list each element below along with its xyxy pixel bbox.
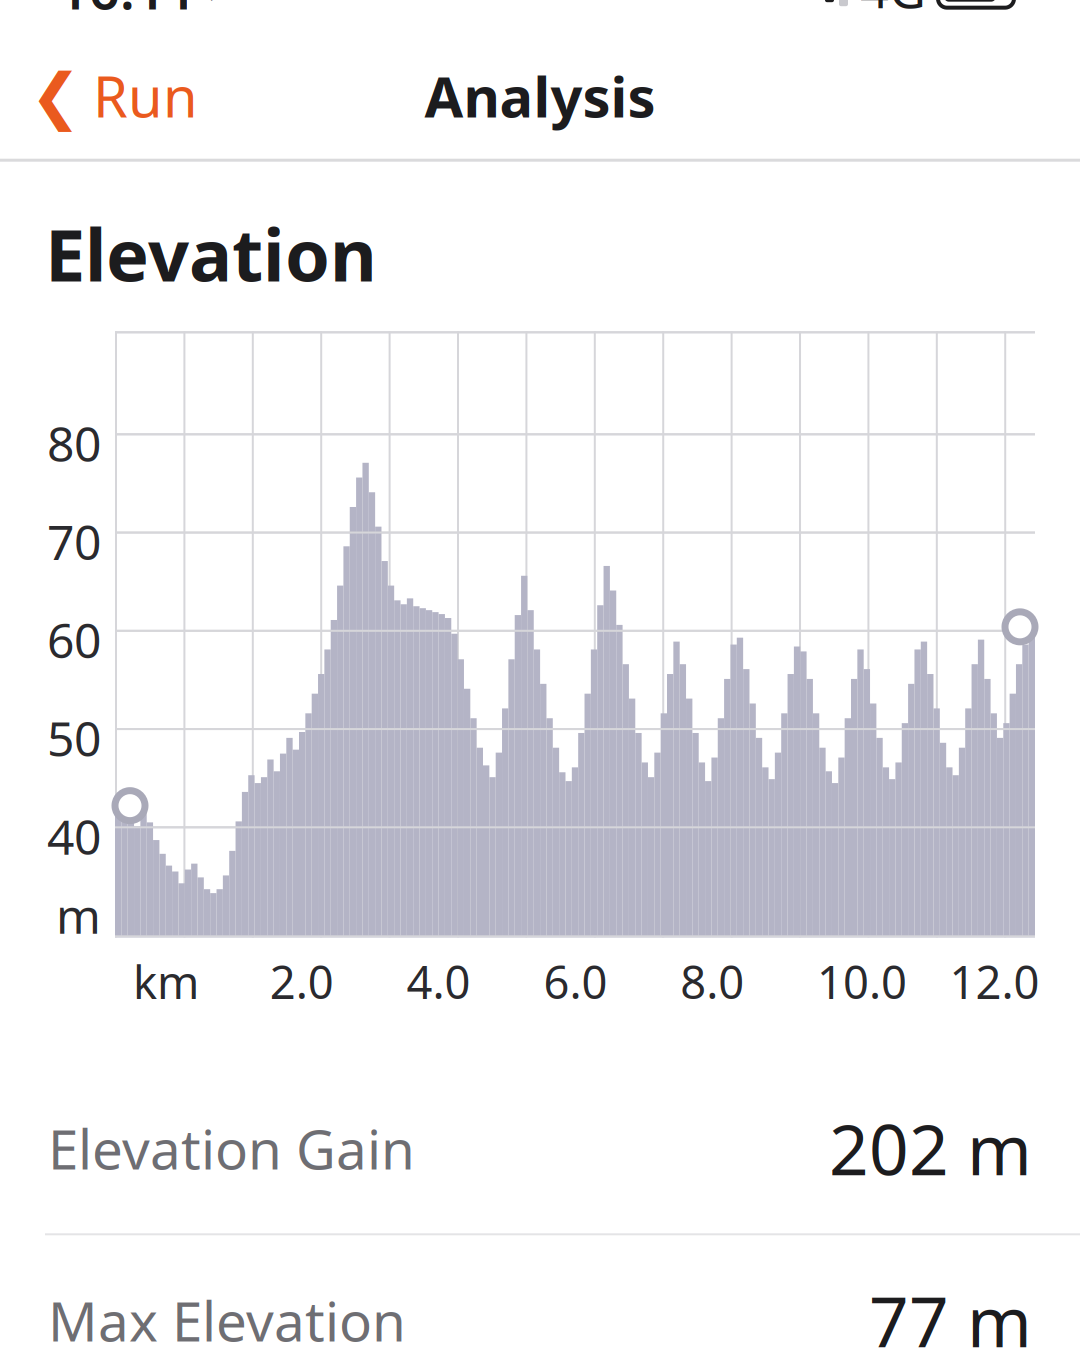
staticText: 50 bbox=[47, 706, 101, 770]
staticText: Analysis bbox=[424, 58, 655, 133]
staticText: 12.0 bbox=[949, 951, 1039, 1011]
staticText: 2.0 bbox=[270, 951, 334, 1011]
staticText: 6.0 bbox=[543, 951, 607, 1011]
button[interactable]: Max Elevation bbox=[0, 1235, 1080, 1350]
staticText: 70 bbox=[47, 510, 101, 573]
staticText: km bbox=[133, 951, 199, 1011]
staticText: 202 m bbox=[829, 1102, 1032, 1194]
staticText: 10.0 bbox=[817, 951, 907, 1011]
staticText: 4G bbox=[860, 0, 926, 22]
staticText: ❮ bbox=[30, 61, 81, 130]
staticText: Max Elevation bbox=[48, 1284, 406, 1350]
staticText: 80 bbox=[47, 411, 101, 475]
button[interactable]: Elevation Gain bbox=[0, 1063, 1080, 1233]
staticText: 77 m bbox=[869, 1274, 1032, 1350]
staticText: m bbox=[56, 883, 101, 947]
staticText: Elevation Gain bbox=[48, 1112, 415, 1185]
staticText: Elevation bbox=[45, 206, 377, 301]
staticText: 16:11 bbox=[58, 0, 197, 24]
staticText: 8.0 bbox=[680, 951, 744, 1011]
staticText: 40 bbox=[47, 804, 101, 868]
staticText: Run bbox=[93, 58, 198, 133]
staticText: ➤ bbox=[207, 0, 236, 8]
button[interactable]: ❮ bbox=[0, 42, 228, 149]
staticText: 4.0 bbox=[407, 951, 471, 1011]
staticText: 60 bbox=[47, 608, 101, 671]
